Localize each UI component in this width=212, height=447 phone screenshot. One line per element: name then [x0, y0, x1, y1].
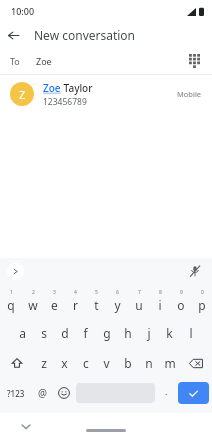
staticText: New conversation: [34, 27, 136, 43]
staticText: Taylor: [61, 81, 93, 95]
staticText: y: [114, 297, 121, 313]
button[interactable]: x: [54, 348, 75, 378]
button[interactable]: 5: [86, 284, 107, 318]
button[interactable]: g: [96, 318, 117, 348]
button[interactable]: 2: [22, 284, 44, 318]
button[interactable]: 9: [170, 284, 191, 318]
staticText: 9: [180, 289, 183, 296]
button[interactable]: n: [138, 348, 159, 378]
staticText: 3: [53, 289, 56, 296]
button[interactable]: Expand toolbar: [7, 263, 24, 280]
staticText: b: [124, 355, 132, 371]
staticText: t: [94, 297, 99, 313]
staticText: l: [189, 325, 193, 341]
button[interactable]: f: [75, 318, 96, 348]
button[interactable]: j: [138, 318, 159, 348]
button[interactable]: Emoji: [53, 378, 74, 408]
button[interactable]: Dialpad: [184, 51, 204, 71]
staticText: 10:00: [11, 5, 35, 17]
button[interactable]: h: [117, 318, 138, 348]
button[interactable]: Hide keyboard: [18, 418, 34, 434]
staticText: d: [61, 325, 69, 341]
staticText: j: [147, 325, 151, 341]
button[interactable]: Z: [0, 75, 212, 113]
staticText: m: [164, 355, 176, 371]
staticText: @: [38, 386, 47, 400]
staticText: p: [198, 297, 206, 313]
button[interactable]: Zoe: [36, 55, 52, 67]
staticText: c: [83, 355, 89, 371]
staticText: 8: [159, 289, 162, 296]
staticText: Mobile: [177, 89, 202, 99]
button[interactable]: 1: [0, 284, 22, 318]
button[interactable]: 0: [191, 284, 212, 318]
staticText: i: [158, 297, 162, 313]
button[interactable]: c: [75, 348, 96, 378]
staticText: v: [103, 355, 110, 371]
staticText: ?123: [7, 388, 25, 399]
staticText: q: [7, 297, 15, 313]
button[interactable]: @: [32, 378, 53, 408]
button[interactable]: 7: [128, 284, 149, 318]
button[interactable]: b: [117, 348, 138, 378]
staticText: 5: [95, 289, 98, 296]
button[interactable]: 4: [65, 284, 86, 318]
button[interactable]: 8: [149, 284, 170, 318]
staticText: a: [19, 325, 26, 341]
staticText: n: [145, 355, 153, 371]
staticText: h: [124, 325, 132, 341]
staticText: Z: [19, 87, 26, 102]
staticText: k: [166, 325, 173, 341]
staticText: Zoe: [36, 55, 52, 67]
staticText: o: [177, 297, 185, 313]
button[interactable]: Send: [178, 382, 209, 404]
staticText: 2: [32, 289, 35, 296]
staticText: 6: [116, 289, 119, 296]
button[interactable]: Backspace: [180, 348, 212, 378]
button[interactable]: a: [12, 318, 33, 348]
button[interactable]: v: [96, 348, 117, 378]
button[interactable]: s: [33, 318, 54, 348]
button[interactable]: 6: [107, 284, 128, 318]
staticText: u: [135, 297, 143, 313]
staticText: 1: [10, 289, 13, 296]
button[interactable]: Navigate up: [0, 22, 26, 48]
button[interactable]: d: [54, 318, 75, 348]
staticText: f: [83, 325, 88, 341]
staticText: Zoe: [43, 81, 61, 95]
button[interactable]: Shift: [0, 348, 33, 378]
button[interactable]: 3: [44, 284, 65, 318]
staticText: g: [103, 325, 111, 341]
button[interactable]: ?123: [0, 378, 32, 408]
staticText: x: [61, 355, 68, 371]
staticText: 123456789: [43, 96, 87, 108]
button[interactable]: .: [157, 378, 175, 408]
staticText: e: [51, 297, 58, 313]
button[interactable]: k: [159, 318, 180, 348]
staticText: 4: [74, 289, 77, 296]
staticText: To: [10, 55, 20, 67]
staticText: 0: [201, 289, 204, 296]
staticText: .: [165, 385, 168, 397]
button[interactable]: Voice input off: [186, 262, 204, 280]
button[interactable]: m: [159, 348, 180, 378]
staticText: z: [41, 355, 47, 371]
button[interactable]: l: [180, 318, 201, 348]
staticText: w: [28, 297, 38, 313]
button[interactable]: z: [33, 348, 54, 378]
staticText: 7: [138, 289, 141, 296]
staticText: r: [73, 297, 78, 313]
staticText: s: [41, 325, 47, 341]
